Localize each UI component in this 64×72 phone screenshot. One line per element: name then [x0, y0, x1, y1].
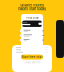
staticText: Your plan: [26, 16, 38, 19]
button[interactable]: Start free trial: [21, 55, 43, 60]
staticText: habits start today: [18, 6, 46, 11]
staticText: Cancel anytime: [24, 61, 40, 64]
staticText: Smarter money: [20, 3, 44, 7]
staticText: Start free trial: [21, 55, 42, 59]
